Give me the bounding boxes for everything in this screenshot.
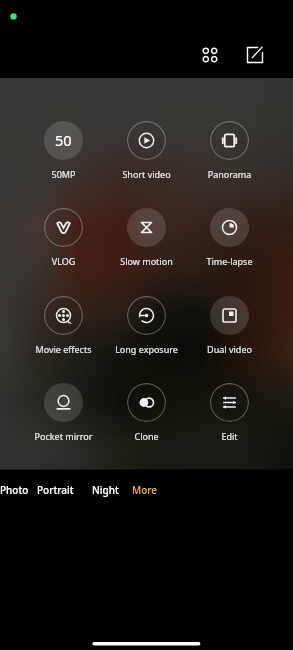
staticText: Panorama [188, 168, 271, 180]
staticText: Portrait [37, 483, 74, 497]
staticText: Pocket mirror [22, 430, 105, 442]
button[interactable]: More [132, 483, 158, 497]
button[interactable]: Edit [188, 383, 271, 434]
button[interactable]: Long exposure [105, 296, 188, 347]
staticText: Clone [105, 430, 188, 442]
button[interactable]: Panorama [188, 121, 271, 172]
button[interactable]: Pocket mirror [22, 383, 105, 434]
staticText: More [132, 483, 158, 497]
button[interactable]: Slow motion [105, 208, 188, 259]
button[interactable]: Movie effects [22, 296, 105, 347]
staticText: Photo [0, 483, 29, 497]
staticText: 50 [55, 130, 72, 150]
staticText: 50MP [22, 168, 105, 180]
button[interactable]: Short video [105, 121, 188, 172]
button[interactable]: Photo [0, 483, 29, 497]
staticText: Time-lapse [188, 255, 271, 267]
staticText: Short video [105, 168, 188, 180]
staticText: Dual video [188, 343, 271, 355]
staticText: Long exposure [105, 343, 188, 355]
button[interactable]: Clone [105, 383, 188, 434]
staticText: Slow motion [105, 255, 188, 267]
button[interactable]: Modes grid [195, 40, 225, 70]
button[interactable]: VLOG [22, 208, 105, 259]
staticText: Movie effects [22, 343, 105, 355]
staticText: Edit [188, 430, 271, 442]
button[interactable]: Night [92, 483, 119, 497]
staticText: VLOG [22, 255, 105, 267]
button[interactable]: Dual video [188, 296, 271, 347]
button[interactable]: Portrait [37, 483, 74, 497]
button[interactable]: Time-lapse [188, 208, 271, 259]
button[interactable]: Edit modes [240, 40, 270, 70]
staticText: Night [92, 483, 119, 497]
button[interactable]: 50 [22, 121, 105, 172]
